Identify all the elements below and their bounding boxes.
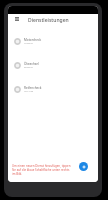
- staticText: Sie auf die blaue Schaltfläche unten rec…: [12, 168, 70, 172]
- button[interactable]: Neuen Dienst hinzufuegen: [79, 162, 88, 171]
- button[interactable]: Menu: [8, 14, 98, 30]
- button[interactable]: Reifencheck: [8, 77, 98, 101]
- staticText: 18.11.20: [24, 90, 34, 93]
- staticText: Um einen neuen Dienst hinzufügen, tippen: [12, 164, 71, 168]
- staticText: Reifencheck: [24, 86, 42, 90]
- staticText: Dienstleistungen: [28, 17, 69, 24]
- button[interactable]: Motorcheck: [8, 29, 98, 53]
- staticText: 12.04.21: [24, 42, 34, 45]
- button[interactable]: Ölwechsel: [8, 53, 98, 77]
- staticText: im Bild.: [12, 172, 23, 176]
- staticText: 03.02.21: [24, 66, 34, 69]
- button[interactable]: Menu: [13, 15, 21, 23]
- staticText: Motorcheck: [24, 38, 42, 42]
- staticText: Ölwechsel: [24, 62, 39, 66]
